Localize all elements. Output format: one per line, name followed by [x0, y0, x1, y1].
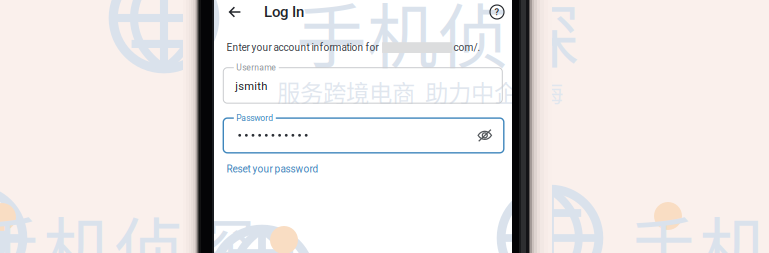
staticText: Enter your account information for — [227, 42, 379, 53]
staticText: 服务跨境电商 助力中企出海 — [277, 75, 563, 109]
button[interactable]: Back — [221, 0, 249, 25]
staticText: Reset your password — [226, 163, 318, 175]
staticText: 手机侦探 — [628, 195, 769, 253]
staticText: Log In — [264, 3, 304, 21]
staticText: 服务跨境电商 助力中企出海 — [277, 75, 563, 109]
staticText: 手机侦探 — [628, 195, 769, 253]
staticText: Password — [236, 113, 273, 123]
staticText: ? — [494, 6, 499, 17]
staticText: 手机侦探 — [296, 0, 580, 83]
button[interactable]: Help — [485, 0, 509, 24]
button[interactable]: Show password — [472, 123, 498, 149]
staticText: 手机侦探 — [0, 195, 256, 253]
staticText: jsmith — [235, 80, 267, 93]
staticText: 手机侦探 — [0, 195, 256, 253]
staticText: 手机侦探 — [296, 0, 580, 83]
staticText: Username — [236, 63, 276, 73]
button[interactable]: Reset your password — [226, 162, 336, 176]
staticText: com/. — [454, 42, 481, 53]
